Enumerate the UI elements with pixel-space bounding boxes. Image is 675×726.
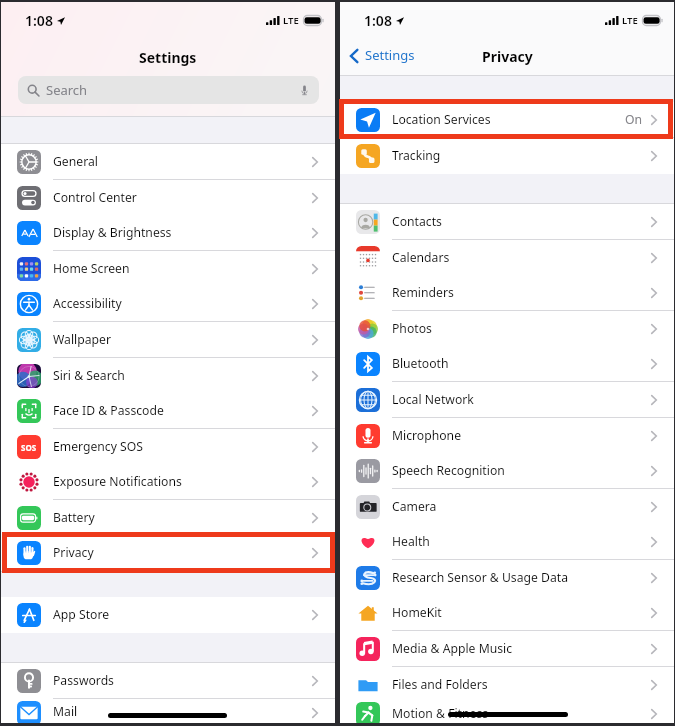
staticText: Wallpaper (53, 331, 111, 348)
staticText: 1:08 (25, 11, 53, 30)
button[interactable]: Photos (340, 311, 674, 347)
staticText: Privacy (482, 47, 533, 66)
button[interactable]: Siri & Search (1, 358, 335, 394)
button[interactable]: Calendars (340, 240, 674, 276)
staticText: Settings (139, 48, 197, 67)
staticText: Search (46, 81, 88, 99)
staticText: Exposure Notifications (53, 473, 182, 490)
button[interactable]: Tracking (340, 138, 674, 174)
button[interactable]: Local Network (340, 382, 674, 418)
button[interactable]: Files and Folders (340, 667, 674, 703)
staticText: Tracking (392, 147, 441, 164)
staticText: Battery (53, 509, 95, 526)
staticText: Media & Apple Music (392, 640, 513, 657)
staticText: Face ID & Passcode (53, 402, 164, 419)
button[interactable]: Control Center (1, 180, 335, 216)
staticText: Siri & Search (53, 367, 125, 384)
staticText: Research Sensor & Usage Data (392, 569, 569, 586)
staticText: Files and Folders (392, 676, 488, 693)
button[interactable]: Exposure Notifications (1, 464, 335, 500)
button[interactable]: Bluetooth (340, 346, 674, 382)
staticText: Passwords (53, 672, 114, 689)
button[interactable]: Passwords (1, 663, 335, 699)
button[interactable]: Emergency SOS (1, 429, 335, 465)
staticText: Settings (365, 46, 415, 64)
button[interactable]: Contacts (340, 204, 674, 240)
button[interactable]: Health (340, 524, 674, 560)
button[interactable]: Battery (1, 500, 335, 536)
button[interactable]: Media & Apple Music (340, 631, 674, 667)
staticText: Display & Brightness (53, 224, 172, 241)
button[interactable]: App Store (1, 597, 335, 633)
staticText: Microphone (392, 427, 462, 444)
button[interactable]: Camera (340, 489, 674, 525)
button[interactable]: Settings (350, 47, 415, 65)
staticText: Accessibility (53, 295, 122, 312)
staticText: LTE (622, 14, 638, 27)
staticText: App Store (53, 606, 110, 623)
staticText: HomeKit (392, 604, 442, 621)
button[interactable]: Accessibility (1, 286, 335, 322)
button[interactable]: Location Services (340, 102, 674, 138)
staticText: General (53, 153, 98, 170)
staticText: Emergency SOS (53, 438, 143, 455)
button[interactable]: Mail (1, 699, 335, 726)
button[interactable]: Search (18, 76, 319, 104)
staticText: Privacy (53, 544, 94, 561)
button[interactable]: Motion & Fitness (340, 702, 674, 726)
button[interactable]: Privacy (1, 535, 335, 571)
button[interactable]: Research Sensor & Usage Data (340, 560, 674, 596)
staticText: Local Network (392, 391, 474, 408)
staticText: 1:08 (364, 11, 392, 30)
staticText: Home Screen (53, 260, 130, 277)
button[interactable]: General (1, 144, 335, 180)
staticText: Speech Recognition (392, 462, 505, 479)
staticText: Bluetooth (392, 355, 449, 372)
button[interactable]: HomeKit (340, 595, 674, 631)
staticText: LTE (283, 14, 299, 27)
staticText: Reminders (392, 284, 454, 301)
staticText: Contacts (392, 213, 442, 230)
staticText: Control Center (53, 189, 137, 206)
button[interactable]: Face ID & Passcode (1, 393, 335, 429)
staticText: Mail (53, 703, 78, 720)
staticText: Camera (392, 498, 437, 515)
button[interactable]: Wallpaper (1, 322, 335, 358)
staticText: Health (392, 533, 430, 550)
staticText: SOS (21, 442, 37, 453)
staticText: Motion & Fitness (392, 705, 489, 722)
staticText: On (625, 111, 643, 128)
button[interactable]: Speech Recognition (340, 453, 674, 489)
button[interactable]: Home Screen (1, 251, 335, 287)
staticText: Calendars (392, 249, 450, 266)
button[interactable]: Reminders (340, 275, 674, 311)
button[interactable]: Microphone (340, 418, 674, 454)
staticText: Photos (392, 320, 432, 337)
staticText: Location Services (392, 111, 491, 128)
button[interactable]: Display & Brightness (1, 215, 335, 251)
